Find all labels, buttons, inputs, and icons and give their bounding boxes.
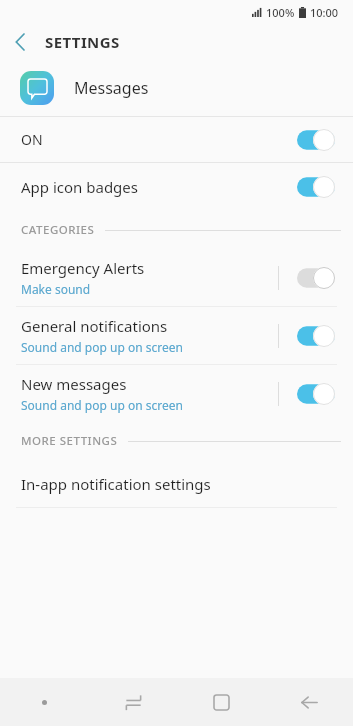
staticText: 100% (266, 5, 295, 20)
staticText: ON (21, 130, 43, 149)
button[interactable]: Recents (89, 678, 177, 726)
staticText: General notifications (21, 316, 168, 336)
staticText: SETTINGS (45, 32, 120, 52)
staticText: Messages (74, 77, 149, 99)
button[interactable]: In-app notification settings (0, 460, 353, 507)
staticText: Sound and pop up on screen (21, 339, 183, 355)
staticText: 10:00 (310, 5, 339, 20)
button[interactable]: Toggle on (297, 129, 335, 151)
staticText: Sound and pop up on screen (21, 397, 183, 413)
button[interactable]: Indicator (0, 678, 89, 726)
staticText: In-app notification settings (21, 474, 211, 494)
button[interactable]: Toggle on (297, 325, 335, 347)
staticText: App icon badges (21, 177, 138, 197)
staticText: New messages (21, 374, 127, 394)
button[interactable]: Toggle off (297, 267, 335, 289)
button[interactable]: Toggle on (297, 176, 335, 198)
button[interactable]: New messages (0, 365, 353, 422)
staticText: CATEGORIES (21, 222, 95, 238)
button[interactable]: App icon badges (0, 163, 353, 211)
button[interactable]: Back (0, 24, 40, 60)
button[interactable]: Toggle on (297, 383, 335, 405)
staticText: Make sound (21, 281, 91, 297)
staticText: MORE SETTINGS (21, 433, 118, 449)
button[interactable]: ON (0, 117, 353, 162)
button[interactable]: Home (177, 678, 265, 726)
button[interactable]: Messages (0, 60, 353, 116)
button[interactable]: Emergency Alerts (0, 249, 353, 306)
staticText: Emergency Alerts (21, 258, 145, 278)
button[interactable]: Back (265, 678, 353, 726)
button[interactable]: General notifications (0, 307, 353, 364)
